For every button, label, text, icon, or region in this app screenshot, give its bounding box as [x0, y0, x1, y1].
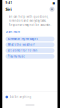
staticText: Siri: [5, 7, 11, 12]
staticText: Play my music: [7, 55, 24, 58]
button[interactable]: Play my music: [5, 54, 54, 59]
staticText: Ask Siri anything: [10, 95, 32, 99]
staticText: Set a timer for 10 min: [7, 49, 37, 52]
staticText: reminders and everyday tasks.: [8, 19, 46, 22]
button[interactable]: Set a timer for 10 min: [5, 48, 54, 53]
staticText: ▮▮: [52, 1, 54, 4]
button[interactable]: Learn more: [2, 30, 57, 34]
staticText: Learn more: [5, 30, 20, 34]
button[interactable]: What's the weather?: [5, 42, 54, 47]
staticText: Siri can help with questions,: [8, 15, 48, 18]
staticText: 9:41: [5, 1, 12, 5]
staticText: What's the weather?: [7, 43, 34, 46]
staticText: Responses may not be accurate.: [8, 23, 51, 27]
button[interactable]: Summarize my messages: [5, 37, 54, 41]
staticText: Summarize my messages: [7, 37, 37, 41]
button[interactable]: Ask Siri anything: [2, 92, 57, 102]
button[interactable]: Account: [49, 7, 54, 12]
